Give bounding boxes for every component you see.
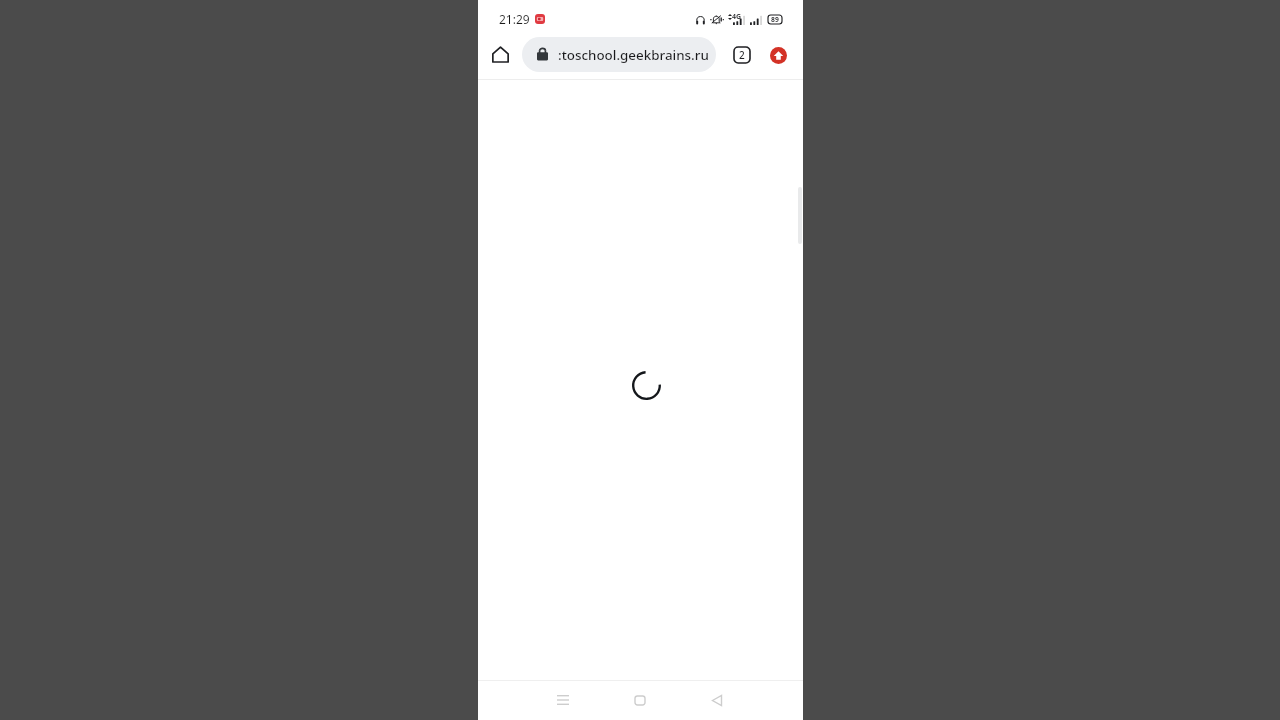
button[interactable]: Recent apps [544,681,582,719]
staticText: 2 [739,48,745,62]
staticText: :toschool.geekbrains.ru [558,46,709,64]
button[interactable]: Tabs: 2 [729,42,755,68]
staticText: 89 [771,15,779,24]
staticText: 4G [732,12,742,22]
button[interactable]: Home [485,39,517,71]
button[interactable]: :toschool.geekbrains.ru [522,37,716,72]
button[interactable]: Home [621,681,659,719]
staticText: 21:29 [499,11,530,27]
button[interactable]: Update [765,42,791,68]
button[interactable]: Back [698,681,736,719]
